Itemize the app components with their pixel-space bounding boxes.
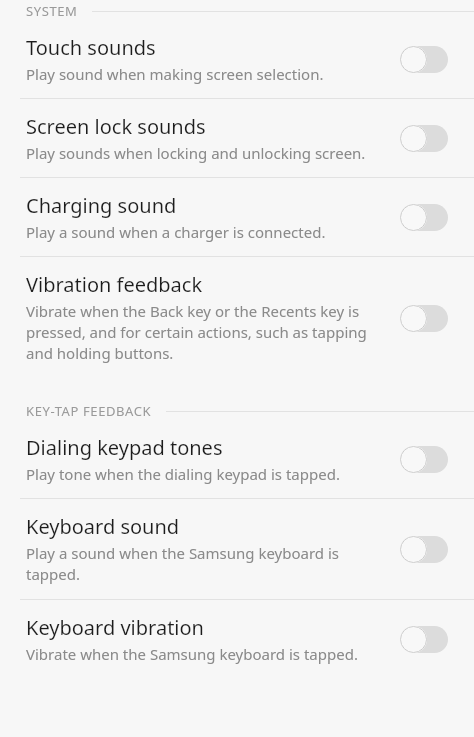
button[interactable]: Dialing keypad tones [0,420,474,498]
staticText: Keyboard vibration [26,614,204,641]
button[interactable]: Toggle switch, off [400,534,452,564]
button[interactable]: Toggle switch, off [400,624,452,654]
staticText: Play sounds when locking and unlocking s… [26,143,366,163]
button[interactable]: Toggle switch, off [400,202,452,232]
staticText: Play a sound when a charger is connected… [26,222,326,242]
button[interactable]: Keyboard sound [0,499,474,599]
staticText: Charging sound [26,192,177,219]
staticText: Play tone when the dialing keypad is tap… [26,464,340,484]
staticText: Vibrate when the Samsung keyboard is tap… [26,644,358,664]
button[interactable]: Touch sounds [0,20,474,98]
button[interactable]: Screen lock sounds [0,99,474,177]
staticText: Keyboard sound [26,513,180,540]
staticText: Dialing keypad tones [26,434,223,461]
staticText: SYSTEM [26,2,78,20]
button[interactable]: Toggle switch, off [400,303,452,333]
staticText: Vibrate when the Back key or the Recents… [26,301,388,364]
staticText: Touch sounds [26,34,156,61]
button[interactable]: Toggle switch, off [400,123,452,153]
staticText: Play a sound when the Samsung keyboard i… [26,543,388,585]
button[interactable]: Vibration feedback [0,257,474,378]
staticText: Vibration feedback [26,271,203,298]
staticText: Screen lock sounds [26,113,206,140]
staticText: Play sound when making screen selection. [26,64,324,84]
button[interactable]: Toggle switch, off [400,444,452,474]
button[interactable]: Toggle switch, off [400,44,452,74]
staticText: KEY-TAP FEEDBACK [26,402,152,420]
button[interactable]: Charging sound [0,178,474,256]
button[interactable]: Keyboard vibration [0,600,474,678]
